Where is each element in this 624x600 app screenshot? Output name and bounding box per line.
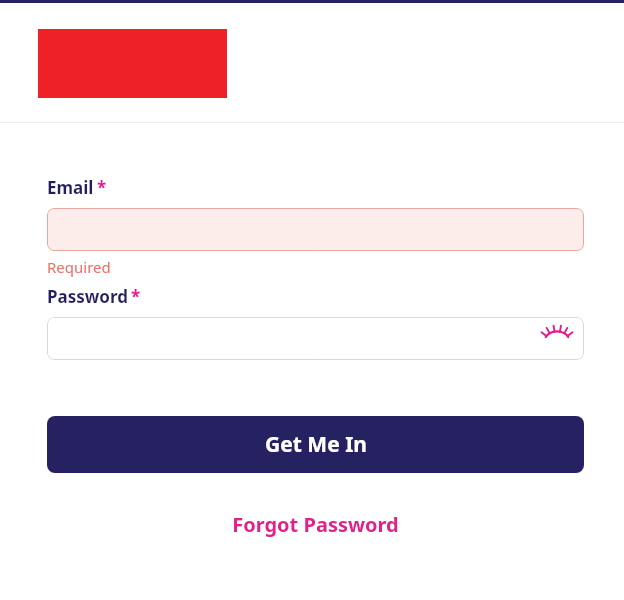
button[interactable]: Email input <box>47 208 584 251</box>
staticText: * <box>97 176 107 199</box>
button[interactable]: Show password <box>540 322 574 356</box>
staticText: Email <box>47 176 94 199</box>
staticText: * <box>131 285 141 308</box>
staticText: Forgot Password <box>232 511 399 538</box>
button[interactable]: Password input <box>47 317 584 360</box>
staticText: Required <box>47 257 111 277</box>
button[interactable]: Forgot Password <box>224 507 407 542</box>
staticText: Password <box>47 285 128 308</box>
button[interactable]: Get Me In <box>47 416 584 473</box>
staticText: Get Me In <box>265 430 367 459</box>
